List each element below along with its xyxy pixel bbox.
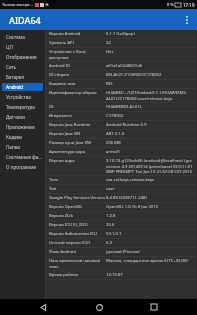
button[interactable]: Google Play Services Version bbox=[46, 194, 197, 202]
button[interactable]: Батарея bbox=[2, 73, 43, 81]
staticText: Сеть bbox=[6, 64, 17, 70]
button[interactable]: Версия Java Runtime bbox=[46, 121, 197, 129]
staticText: Отображение bbox=[6, 54, 37, 60]
button[interactable]: Системные файлы bbox=[2, 153, 43, 161]
button[interactable]: More options bbox=[177, 10, 197, 30]
button[interactable]: Версия ZLib bbox=[46, 212, 197, 220]
button[interactable]: Recents bbox=[141, 299, 167, 315]
button[interactable]: Отображение bbox=[2, 53, 43, 61]
button[interactable]: Папки bbox=[2, 143, 43, 151]
staticText: русский (Россия) bbox=[106, 249, 194, 255]
button[interactable]: Кодеки bbox=[2, 133, 43, 141]
staticText: Только востре... bbox=[2, 2, 33, 7]
button[interactable]: Версия OpenSSL bbox=[46, 203, 197, 211]
staticText: Версия ICU (U_ISO) bbox=[49, 222, 106, 228]
staticText: Версия Java Runtime bbox=[49, 122, 106, 128]
button[interactable]: Устройство с Root-доступом bbox=[46, 48, 197, 61]
staticText: Язык Android bbox=[49, 249, 106, 255]
button[interactable]: Устройства bbox=[2, 93, 43, 101]
staticText: 12:13:07 bbox=[106, 272, 194, 278]
staticText: Датчики bbox=[6, 114, 25, 120]
staticText: Устройства bbox=[6, 94, 31, 100]
button[interactable]: Back bbox=[30, 299, 56, 315]
button[interactable]: Наш временной часовой пояс bbox=[46, 257, 197, 270]
staticText: Кодовое имя bbox=[49, 81, 106, 87]
staticText: 22 bbox=[106, 40, 194, 46]
staticText: 6.3 bbox=[106, 240, 194, 246]
staticText: Архитектура ядра bbox=[49, 149, 106, 155]
staticText: Уровень API bbox=[49, 40, 106, 46]
button[interactable]: Температура bbox=[2, 103, 43, 111]
button[interactable]: Архитектура ядра bbox=[46, 148, 197, 156]
staticText: 8.4.89 (2428711-248) bbox=[106, 195, 194, 201]
button[interactable]: ID сборки bbox=[46, 71, 197, 79]
button[interactable]: Приложения bbox=[2, 123, 43, 131]
staticText: 17:19 bbox=[183, 2, 195, 8]
staticText: ID bbox=[49, 104, 106, 110]
staticText: ID сборки bbox=[49, 72, 106, 78]
button[interactable]: Версия ICU (U_ISO) bbox=[46, 221, 197, 229]
staticText: REL bbox=[106, 81, 194, 87]
staticText: ART 2.1.0 bbox=[106, 131, 194, 137]
button[interactable]: Система bbox=[2, 33, 43, 41]
staticText: 256 MB bbox=[106, 140, 194, 146]
staticText: C17B002 bbox=[106, 113, 194, 119]
button[interactable]: Android ID bbox=[46, 62, 197, 70]
staticText: Android ID bbox=[49, 63, 106, 69]
staticText: HUAWEI/.../UZT/hwbsd:5.1.1/HUAWEIM3-AL01… bbox=[106, 90, 194, 101]
staticText: Версия Java VM bbox=[49, 131, 106, 137]
button[interactable]: ID bbox=[46, 103, 197, 111]
button[interactable]: Сеть bbox=[2, 63, 43, 71]
button[interactable]: Инкремент bbox=[46, 112, 197, 120]
staticText: Температура bbox=[6, 104, 35, 110]
staticText: Unicode версия (CU) bbox=[49, 240, 106, 246]
staticText: Версия библиотеки ICU bbox=[49, 231, 106, 237]
button[interactable]: Версия библиотеки ICU bbox=[46, 230, 197, 238]
staticText: 0 % bbox=[167, 2, 174, 7]
staticText: О программе bbox=[6, 164, 36, 170]
button[interactable]: Время работы bbox=[46, 271, 197, 279]
button[interactable]: Идентификатор сборки bbox=[46, 89, 197, 102]
button[interactable]: Уровень API bbox=[46, 39, 197, 47]
button[interactable]: Кодовое имя bbox=[46, 80, 197, 88]
staticText: Android bbox=[6, 84, 24, 90]
staticText: Версия ZLib bbox=[49, 213, 106, 219]
button[interactable]: Размер кучи Java VM bbox=[46, 139, 197, 147]
staticText: Время работы bbox=[49, 272, 106, 278]
button[interactable]: Версия Android bbox=[46, 30, 197, 38]
staticText: 25.6 bbox=[106, 222, 194, 228]
staticText: Батарея bbox=[6, 74, 24, 80]
button[interactable]: Язык Android bbox=[46, 248, 197, 256]
staticText: Кодеки bbox=[6, 134, 23, 140]
staticText: OpenSSL 1.0.1h 8 Jan 2015 bbox=[106, 204, 194, 210]
staticText: 1.2.8 bbox=[106, 213, 194, 219]
staticText: Google Play Services Version bbox=[49, 195, 106, 201]
staticText: a61a1a52d8651d6 bbox=[106, 63, 194, 69]
staticText: user bbox=[106, 186, 194, 192]
staticText: AIDA64 bbox=[9, 14, 41, 26]
staticText: Приложения bbox=[6, 124, 35, 130]
staticText: Система bbox=[6, 34, 25, 40]
button[interactable]: Home bbox=[86, 299, 112, 315]
staticText: ota-rel-keys,release-keys bbox=[106, 177, 194, 183]
staticText: Версия ядра bbox=[49, 158, 106, 164]
staticText: Версия OpenSSL bbox=[49, 204, 106, 210]
button[interactable]: Android bbox=[2, 83, 43, 91]
button[interactable]: Версия Java VM bbox=[46, 130, 197, 138]
staticText: 3.10.74-g123cdc66 (android@localhost) (g… bbox=[106, 158, 194, 174]
staticText: Размер кучи Java VM bbox=[49, 140, 106, 146]
staticText: Нет bbox=[106, 49, 194, 55]
button[interactable]: Тип bbox=[46, 185, 197, 193]
button[interactable]: Теги bbox=[46, 176, 197, 184]
staticText: Наш временной часовой пояс bbox=[49, 258, 106, 269]
button[interactable]: Unicode версия (CU) bbox=[46, 239, 197, 247]
staticText: Тип bbox=[49, 186, 106, 192]
staticText: M3-AL01-V100R001C17B002 bbox=[106, 72, 194, 78]
button[interactable]: ЦП bbox=[2, 43, 43, 51]
button[interactable]: Версия ядра bbox=[46, 157, 197, 175]
staticText: Москва, стандартное время (UTC+03:00) bbox=[106, 258, 194, 264]
button[interactable]: Датчики bbox=[2, 113, 43, 121]
button[interactable]: О программе bbox=[2, 163, 43, 171]
staticText: Системные файлы bbox=[6, 154, 43, 160]
staticText: Версия Android bbox=[49, 31, 106, 37]
